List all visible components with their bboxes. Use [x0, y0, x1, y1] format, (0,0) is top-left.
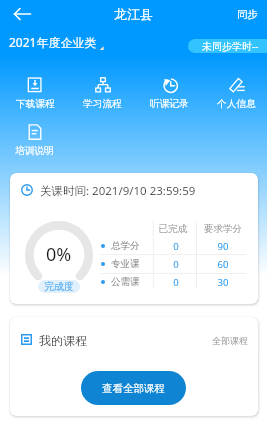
staticText: 总学分	[111, 240, 140, 252]
button[interactable]: 查看全部课程	[81, 371, 186, 405]
button[interactable]: 学习流程	[69, 76, 136, 110]
staticText: 听课记录	[150, 98, 189, 110]
staticText: 2021年度企业类	[9, 34, 97, 50]
staticText: 全部课程	[212, 335, 248, 346]
staticText: 培训说明	[15, 145, 54, 157]
button[interactable]: 听课记录	[136, 76, 203, 110]
staticText: 30	[203, 276, 243, 289]
staticText: 完成度	[44, 280, 74, 293]
staticText: 60	[203, 258, 243, 271]
staticText: 龙江县	[114, 6, 153, 22]
button[interactable]: 同步	[228, 4, 267, 25]
staticText: 0%	[46, 242, 72, 267]
staticText: 同步	[237, 8, 258, 21]
button[interactable]: 个人信息	[203, 76, 267, 110]
staticText: 学习流程	[83, 98, 122, 110]
button[interactable]: Back	[11, 2, 35, 26]
button[interactable]: 完成度	[38, 280, 80, 293]
staticText: 0	[156, 240, 196, 253]
staticText: 90	[203, 240, 243, 253]
button[interactable]: 全部课程	[206, 332, 258, 349]
button[interactable]: 2021年度企业类	[6, 32, 107, 54]
staticText: 0	[156, 258, 196, 271]
staticText: 专业课	[111, 258, 140, 270]
staticText: 0	[156, 276, 196, 289]
button[interactable]: 下载课程	[1, 76, 69, 110]
staticText: 要求学分	[203, 223, 243, 235]
button[interactable]: 培训说明	[1, 123, 68, 157]
button[interactable]: 未同步学时--	[188, 39, 267, 53]
staticText: 查看全部课程	[102, 382, 165, 395]
staticText: 未同步学时--	[202, 39, 259, 53]
staticText: 已完成	[153, 223, 193, 235]
staticText: 关课时间: 2021/9/10 23:59:59	[40, 183, 196, 199]
staticText: 个人信息	[217, 98, 256, 110]
staticText: 下载课程	[16, 98, 55, 110]
staticText: 我的课程	[39, 333, 87, 348]
staticText: 公需课	[111, 276, 140, 288]
